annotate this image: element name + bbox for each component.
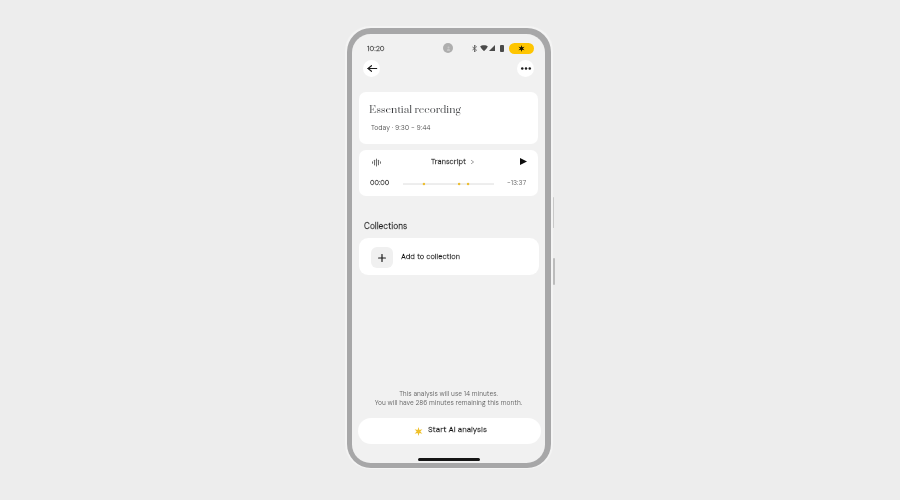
staticText: 10:20 — [367, 44, 385, 53]
staticText: Start AI analysis — [428, 424, 487, 434]
button[interactable]: Back — [363, 60, 380, 77]
button[interactable]: Transcript — [431, 157, 474, 167]
staticText: Add to collection — [401, 252, 461, 262]
staticText: Collections — [364, 221, 408, 232]
staticText: 00:00 — [370, 178, 390, 187]
button[interactable]: Play — [517, 155, 530, 168]
button[interactable]: Add to collection — [359, 238, 539, 275]
button[interactable]: Essential recording — [359, 92, 538, 144]
staticText: -13:37 — [507, 178, 527, 187]
button[interactable]: Start AI analysis — [358, 418, 541, 444]
button[interactable]: AI assistant — [509, 43, 534, 54]
button[interactable]: Waveform — [369, 155, 384, 170]
staticText: Today · 9:30 - 9:44 — [371, 123, 431, 132]
button[interactable]: More options — [517, 60, 534, 77]
staticText: Transcript — [431, 157, 466, 167]
staticText: This analysis will use 14 minutes. You w… — [352, 389, 545, 407]
staticText: Essential recording — [369, 103, 461, 116]
